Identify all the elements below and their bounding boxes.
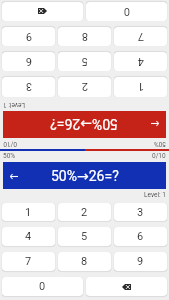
- button[interactable]: 9: [2, 27, 55, 46]
- staticText: 50%→26=?: [51, 168, 119, 184]
- staticText: 50%→26=?: [50, 116, 118, 132]
- button[interactable]: 0: [2, 277, 83, 296]
- staticText: 0: [39, 280, 46, 293]
- staticText: 9: [137, 255, 144, 268]
- button[interactable]: 4: [2, 227, 55, 246]
- staticText: 9: [25, 30, 32, 43]
- button[interactable]: 6: [114, 227, 167, 246]
- staticText: 5: [81, 230, 88, 243]
- button[interactable]: Delete: [86, 277, 167, 296]
- staticText: 2: [81, 80, 88, 93]
- button[interactable]: Delete: [2, 2, 83, 21]
- button[interactable]: 1: [2, 203, 55, 221]
- staticText: 6: [25, 55, 32, 68]
- button[interactable]: 5: [58, 52, 111, 71]
- button[interactable]: 0: [86, 2, 167, 21]
- button[interactable]: 1: [114, 77, 167, 97]
- staticText: 50%: [3, 152, 16, 160]
- button[interactable]: 7: [2, 252, 55, 271]
- button[interactable]: 3: [2, 77, 55, 97]
- button[interactable]: 6: [2, 52, 55, 71]
- staticText: 1: [25, 206, 32, 219]
- staticText: 0/10: [152, 152, 166, 160]
- staticText: 2: [81, 206, 88, 219]
- button[interactable]: 9: [114, 252, 167, 271]
- button[interactable]: 7: [114, 27, 167, 46]
- staticText: Level: 1: [3, 101, 25, 109]
- staticText: 8: [81, 255, 88, 268]
- staticText: 50%: [153, 140, 166, 148]
- staticText: 4: [137, 55, 144, 68]
- staticText: 4: [25, 230, 32, 243]
- staticText: 3: [25, 80, 32, 93]
- staticText: 5: [81, 55, 88, 68]
- staticText: 7: [137, 30, 144, 43]
- button[interactable]: 5: [58, 227, 111, 246]
- button[interactable]: 50%→26=?: [3, 111, 166, 138]
- button[interactable]: 2: [58, 77, 111, 97]
- staticText: 6: [137, 230, 144, 243]
- staticText: 3: [137, 206, 144, 219]
- button[interactable]: 8: [58, 252, 111, 271]
- button[interactable]: 2: [58, 203, 111, 221]
- button[interactable]: 8: [58, 27, 111, 46]
- staticText: Level: 1: [144, 191, 166, 199]
- button[interactable]: 50%→26=?: [3, 162, 166, 189]
- button[interactable]: 4: [114, 52, 167, 71]
- staticText: 0/10: [3, 140, 17, 148]
- staticText: 0: [123, 5, 130, 18]
- staticText: 1: [137, 80, 144, 93]
- staticText: 7: [25, 255, 32, 268]
- staticText: 8: [81, 30, 88, 43]
- button[interactable]: 3: [114, 203, 167, 221]
